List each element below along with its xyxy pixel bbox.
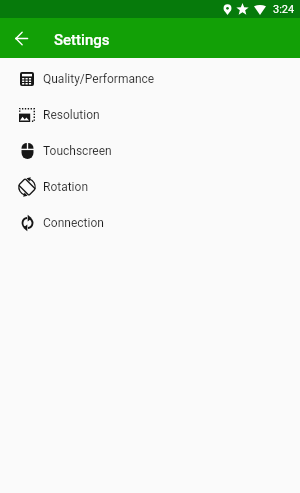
staticText: Rotation bbox=[43, 180, 89, 194]
button[interactable]: Rotation bbox=[0, 169, 300, 205]
button[interactable]: Touchscreen bbox=[0, 133, 300, 169]
button[interactable]: Quality/Performance bbox=[0, 61, 300, 97]
staticText: Resolution bbox=[43, 108, 100, 122]
staticText: Settings bbox=[54, 31, 110, 49]
staticText: 3:24 bbox=[273, 3, 295, 16]
staticText: Connection bbox=[43, 216, 104, 230]
staticText: Quality/Performance bbox=[43, 72, 155, 86]
button[interactable]: Back bbox=[9, 26, 34, 51]
button[interactable]: Connection bbox=[0, 205, 300, 241]
button[interactable]: Resolution bbox=[0, 97, 300, 133]
staticText: Touchscreen bbox=[43, 144, 112, 158]
